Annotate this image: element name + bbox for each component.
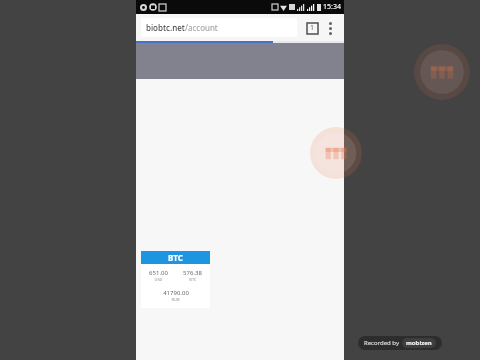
button[interactable]: Tabs — [303, 19, 321, 37]
button[interactable]: biobtc.net — [141, 18, 297, 37]
staticText: 576.38 — [183, 269, 202, 277]
staticText: biobtc.net — [146, 22, 185, 33]
staticText: /account — [185, 22, 218, 33]
staticText: RUB — [171, 297, 180, 302]
staticText: BTC — [189, 277, 197, 282]
staticText: USD — [154, 277, 163, 282]
button[interactable]: More options — [321, 19, 339, 37]
button[interactable]: BTC — [141, 251, 210, 308]
staticText: 1 — [310, 23, 315, 33]
staticText: BTC — [168, 252, 183, 263]
staticText: 15:34 — [323, 2, 341, 12]
staticText: 41790.00 — [163, 289, 189, 297]
staticText: 651.00 — [149, 269, 168, 277]
staticText: Recorded by — [364, 339, 399, 347]
staticText: mobizen — [406, 339, 432, 347]
